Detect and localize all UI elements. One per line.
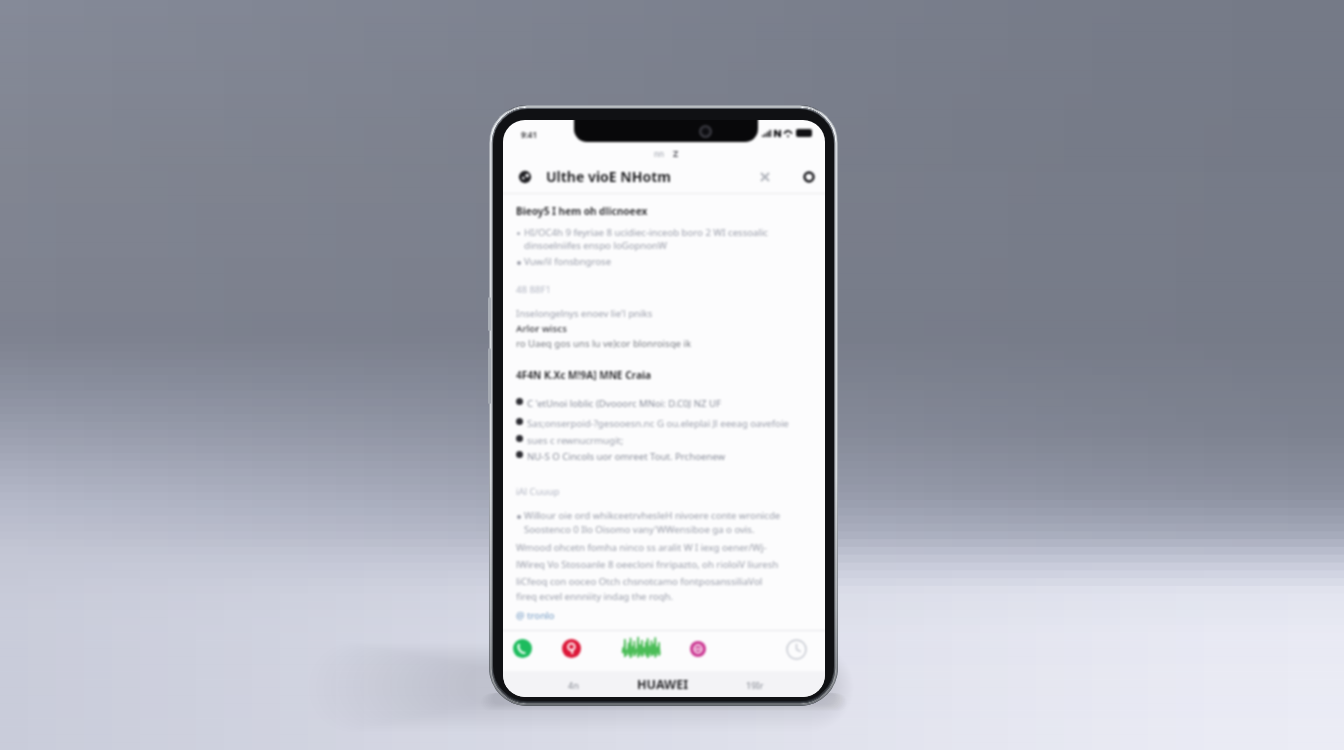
staticText: 48 88F1 (516, 283, 551, 296)
staticText: Bieoy5 I hem oh dlicnoeex (516, 204, 648, 218)
staticText: lWireq Vo Stosoanle 8 oeecloni fnripazto… (516, 558, 779, 571)
staticText: @ tronlo (516, 609, 555, 622)
staticText: 9:41 (521, 129, 537, 140)
staticText: dinsoelniifes enspo loGopnonW (524, 239, 667, 252)
staticText: fireq ecvel ennniity indag the roqh. (516, 590, 673, 603)
button[interactable]: More options (796, 164, 822, 190)
button[interactable]: Ulthe vioE NHotm (518, 160, 671, 193)
staticText: Inselongelnys enoev lie'l pniks (516, 307, 653, 320)
button[interactable]: HUAWEI (637, 676, 688, 693)
staticText: Z (673, 147, 679, 159)
button[interactable]: Recent (786, 639, 807, 660)
staticText: Wmood ohcetn fomha ninco ss aralit W I i… (516, 541, 767, 554)
staticText: 4F4N K.Xc M!9A] MNE Craia (516, 368, 652, 382)
staticText: Vuw/il fonsbngrose (524, 255, 612, 268)
staticText: C 'etUnoi loblic (Dvooorc MNoi: D.C0J NZ… (527, 397, 721, 410)
staticText: NU-S O Cincols uor omreet Tout. Prchoene… (527, 450, 726, 463)
staticText: Sas;onserpoid-?gesooesn.nc G ou.eleplai … (527, 417, 789, 430)
staticText: Willour oie ord whikceetrvhesleH nivoere… (524, 509, 781, 522)
staticText: iAl Cuuup (516, 485, 560, 498)
staticText: HI/OC4h 9 feyriae 8 ucidiec-inceob boro … (524, 226, 768, 239)
staticText: sues c rewnucrmugit; (527, 434, 624, 447)
staticText: Ulthe vioE NHotm (546, 167, 671, 186)
button[interactable]: 4n (568, 679, 579, 691)
button[interactable]: Call (513, 639, 532, 658)
staticText: Soostenco 0 Ilo Oisomo vany'WWensiboe ga… (524, 523, 755, 536)
staticText: nn (654, 148, 665, 159)
button[interactable]: Voice waveform (622, 636, 660, 658)
staticText: liCfeoq con ooceo Otch chsnotcamo fontpo… (516, 575, 763, 588)
staticText: ro Uaeq gos uns lu ve)cor blonroisqe ik (516, 337, 692, 350)
staticText: Arlor wiscs (516, 322, 567, 335)
button[interactable]: 19Ir (746, 679, 764, 691)
button[interactable]: Messages (690, 641, 706, 657)
button[interactable]: End call (562, 639, 581, 658)
button[interactable]: Share (752, 164, 778, 190)
button[interactable]: @ tronlo (516, 609, 555, 622)
